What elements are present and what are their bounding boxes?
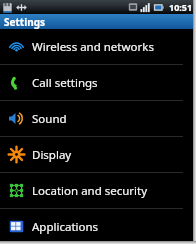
button[interactable]: Sound: [0, 101, 196, 136]
staticText: Sound: [32, 111, 67, 127]
staticText: 10:51: [169, 1, 193, 13]
button[interactable]: Call settings: [0, 65, 196, 100]
staticText: Call settings: [32, 75, 98, 91]
button[interactable]: Wireless and networks: [0, 29, 196, 64]
staticText: Location and security: [32, 183, 148, 199]
staticText: Settings: [4, 15, 45, 29]
staticText: Applications: [32, 219, 99, 235]
button[interactable]: Location and security: [0, 173, 196, 208]
button[interactable]: Applications: [0, 209, 196, 244]
staticText: Display: [32, 147, 72, 163]
staticText: Wireless and networks: [32, 39, 154, 55]
button[interactable]: Display: [0, 137, 196, 172]
